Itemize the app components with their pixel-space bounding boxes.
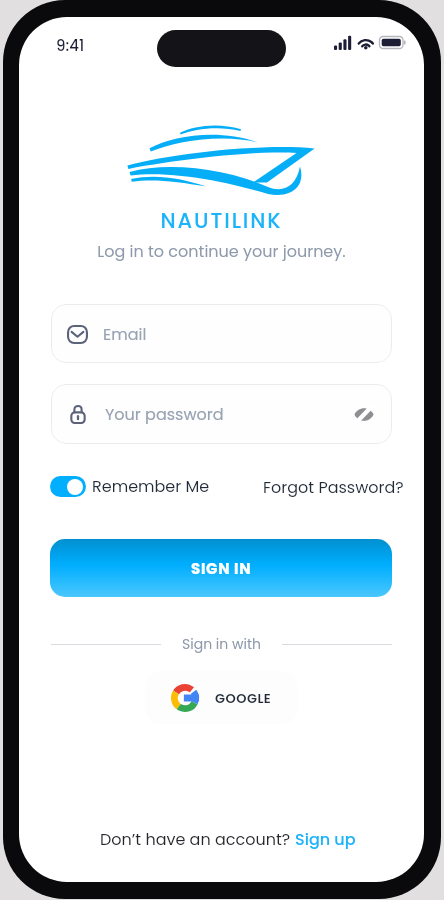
staticText: Log in to continue your journey.	[19, 240, 424, 262]
staticText: Email	[103, 323, 147, 345]
button[interactable]: Forgot Password?	[263, 476, 404, 498]
button[interactable]: Remember Me	[50, 475, 210, 497]
staticText: Sign up	[295, 828, 356, 850]
staticText: Forgot Password?	[263, 476, 404, 498]
staticText: Don’t have an account?	[100, 828, 295, 850]
staticText: Sign in with	[19, 634, 424, 654]
staticText: SIGN IN	[191, 558, 252, 579]
button[interactable]: Show password	[352, 402, 376, 426]
button[interactable]: Email	[51, 304, 392, 363]
staticText: NAUTILINK	[19, 206, 424, 235]
button[interactable]: Sign up	[295, 828, 356, 850]
staticText: Remember Me	[92, 475, 210, 497]
button[interactable]: SIGN IN	[50, 539, 392, 597]
staticText: 9:41	[56, 35, 85, 56]
button[interactable]: GOOGLE	[145, 671, 298, 724]
staticText: Your password	[105, 403, 224, 425]
button[interactable]: Your password	[51, 384, 392, 444]
staticText: GOOGLE	[215, 689, 272, 707]
